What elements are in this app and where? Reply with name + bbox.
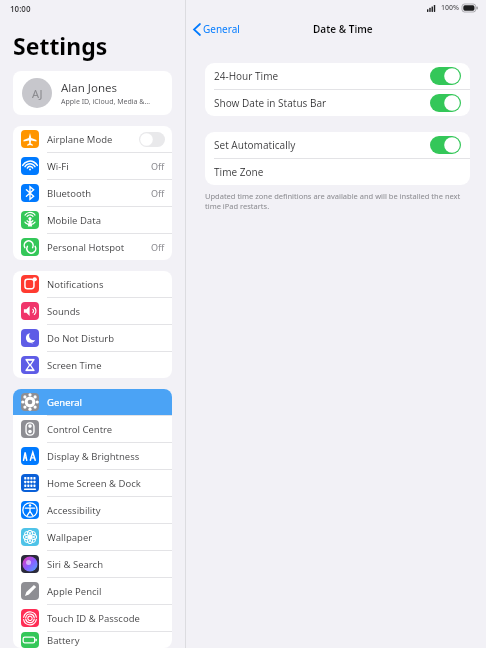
- button[interactable]: Notifications: [13, 271, 172, 297]
- staticText: Do Not Disturb: [47, 332, 165, 345]
- button[interactable]: Siri & Search: [13, 551, 172, 577]
- button[interactable]: Off: [139, 132, 165, 147]
- button[interactable]: 24-Hour Time: [205, 63, 470, 89]
- button[interactable]: On: [430, 67, 461, 85]
- staticText: Home Screen & Dock: [47, 477, 165, 490]
- staticText: Control Centre: [47, 423, 165, 436]
- staticText: Apple Pencil: [47, 585, 165, 598]
- button[interactable]: On: [430, 136, 461, 154]
- button[interactable]: On: [430, 94, 461, 112]
- staticText: Screen Time: [47, 359, 165, 372]
- button[interactable]: Time Zone: [205, 159, 470, 185]
- button[interactable]: Home Screen & Dock: [13, 470, 172, 496]
- staticText: 100%: [441, 3, 459, 13]
- staticText: Touch ID & Passcode: [47, 612, 165, 625]
- button[interactable]: Sounds: [13, 298, 172, 324]
- staticText: Accessibility: [47, 504, 165, 517]
- staticText: Off: [151, 160, 165, 172]
- button[interactable]: Mobile Data: [13, 207, 172, 233]
- button[interactable]: Apple Pencil: [13, 578, 172, 604]
- button[interactable]: Personal Hotspot: [13, 234, 172, 260]
- button[interactable]: Airplane Mode: [13, 126, 172, 152]
- staticText: Settings: [13, 30, 108, 61]
- staticText: Set Automatically: [214, 138, 430, 152]
- button[interactable]: Control Centre: [13, 416, 172, 442]
- staticText: Date & Time: [313, 22, 373, 36]
- staticText: 10:00: [10, 3, 31, 14]
- staticText: Off: [151, 187, 165, 199]
- button[interactable]: Screen Time: [13, 352, 172, 378]
- button[interactable]: Wi-Fi: [13, 153, 172, 179]
- button[interactable]: Bluetooth: [13, 180, 172, 206]
- staticText: Off: [151, 241, 165, 253]
- staticText: Siri & Search: [47, 558, 165, 571]
- staticText: Bluetooth: [47, 187, 151, 200]
- staticText: Sounds: [47, 305, 165, 318]
- staticText: Apple ID, iCloud, Media &…: [61, 97, 150, 107]
- button[interactable]: Do Not Disturb: [13, 325, 172, 351]
- staticText: Updated time zone definitions are availa…: [205, 191, 464, 211]
- button[interactable]: General: [186, 19, 246, 39]
- button[interactable]: Wallpaper: [13, 524, 172, 550]
- button[interactable]: Battery: [13, 632, 172, 648]
- staticText: Battery: [47, 634, 165, 647]
- button[interactable]: Touch ID & Passcode: [13, 605, 172, 631]
- staticText: Display & Brightness: [47, 450, 165, 463]
- staticText: Time Zone: [214, 165, 461, 179]
- staticText: Mobile Data: [47, 214, 165, 227]
- button[interactable]: Display & Brightness: [13, 443, 172, 469]
- staticText: General: [47, 396, 165, 409]
- staticText: 24-Hour Time: [214, 69, 430, 83]
- staticText: Show Date in Status Bar: [214, 96, 430, 110]
- button[interactable]: Show Date in Status Bar: [205, 90, 470, 116]
- staticText: General: [203, 22, 240, 36]
- button[interactable]: AJ: [13, 71, 172, 115]
- staticText: Personal Hotspot: [47, 241, 151, 254]
- staticText: Wallpaper: [47, 531, 165, 544]
- staticText: Wi-Fi: [47, 160, 151, 173]
- button[interactable]: General: [13, 389, 172, 415]
- staticText: AJ: [32, 86, 43, 101]
- button[interactable]: Set Automatically: [205, 132, 470, 158]
- staticText: Airplane Mode: [47, 133, 139, 146]
- staticText: Alan Jones: [61, 80, 118, 96]
- staticText: Notifications: [47, 278, 165, 291]
- button[interactable]: Accessibility: [13, 497, 172, 523]
